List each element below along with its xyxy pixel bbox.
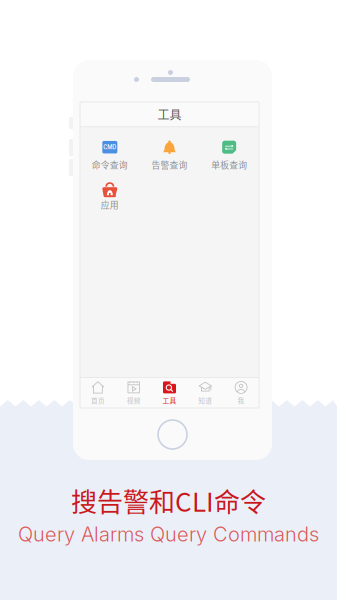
staticText: 工具 — [157, 106, 181, 123]
button[interactable]: 工具 — [152, 378, 187, 408]
button[interactable]: 我 — [223, 378, 259, 408]
staticText: 搜告警和CLI命令 — [71, 482, 266, 519]
button[interactable]: 视频 — [116, 378, 152, 408]
button[interactable]: 单板查询 — [199, 134, 259, 174]
staticText: 告警查询 — [151, 158, 187, 171]
staticText: 命令查询 — [92, 158, 128, 171]
button[interactable]: 首页 — [80, 378, 116, 408]
staticText: 首页 — [91, 395, 105, 405]
staticText: 知道 — [198, 395, 212, 405]
staticText: 视频 — [127, 395, 141, 405]
button[interactable]: 知道 — [187, 378, 223, 408]
staticText: CMD — [103, 144, 116, 151]
button[interactable]: CMD — [80, 134, 140, 174]
staticText: 工具 — [162, 395, 176, 405]
button[interactable]: 告警查询 — [140, 134, 199, 174]
staticText: Query Alarms Query Commands — [18, 522, 319, 546]
staticText: 我 — [238, 395, 245, 405]
staticText: 单板查询 — [211, 158, 247, 171]
button[interactable]: 应用 — [80, 174, 140, 214]
staticText: 应用 — [101, 198, 119, 211]
